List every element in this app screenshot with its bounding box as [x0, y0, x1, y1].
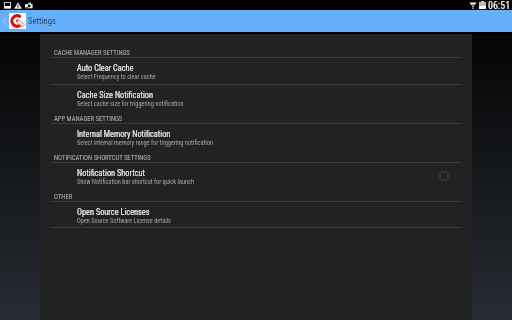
staticText: APP MANAGER SETTINGS — [54, 115, 123, 123]
staticText: Open Source Licenses — [77, 207, 150, 217]
staticText: Internal Memory Notification — [77, 129, 171, 139]
button[interactable]: Cache Size Notification — [40, 85, 472, 111]
staticText: Auto Clear Cache — [77, 63, 134, 73]
staticText: Open Source Software License details — [77, 217, 171, 224]
button[interactable]: Auto Clear Cache — [40, 58, 472, 84]
staticText: CACHE MANAGER SETTINGS — [54, 49, 130, 57]
staticText: Cache Size Notification — [77, 90, 153, 100]
staticText: Show Notification bar shortcut for quick… — [77, 178, 194, 185]
staticText: OTHER — [54, 193, 73, 201]
staticText: 06:51 — [488, 0, 511, 10]
staticText: Select internal memory range for trigger… — [77, 139, 213, 146]
staticText: NOTIFICATION SHORTCUT SETTINGS — [54, 154, 151, 162]
button[interactable]: Internal Memory Notification — [40, 124, 472, 150]
button[interactable]: Navigate up — [0, 10, 9, 32]
staticText: Notification Shortcut — [77, 168, 145, 178]
staticText: Select cache size for triggering notific… — [77, 100, 184, 107]
button[interactable]: Open Source Licenses — [40, 202, 472, 228]
staticText: Settings — [28, 16, 56, 26]
button[interactable]: Notification Shortcut — [40, 163, 472, 189]
staticText: Select Frequency to clear cache — [77, 73, 156, 80]
